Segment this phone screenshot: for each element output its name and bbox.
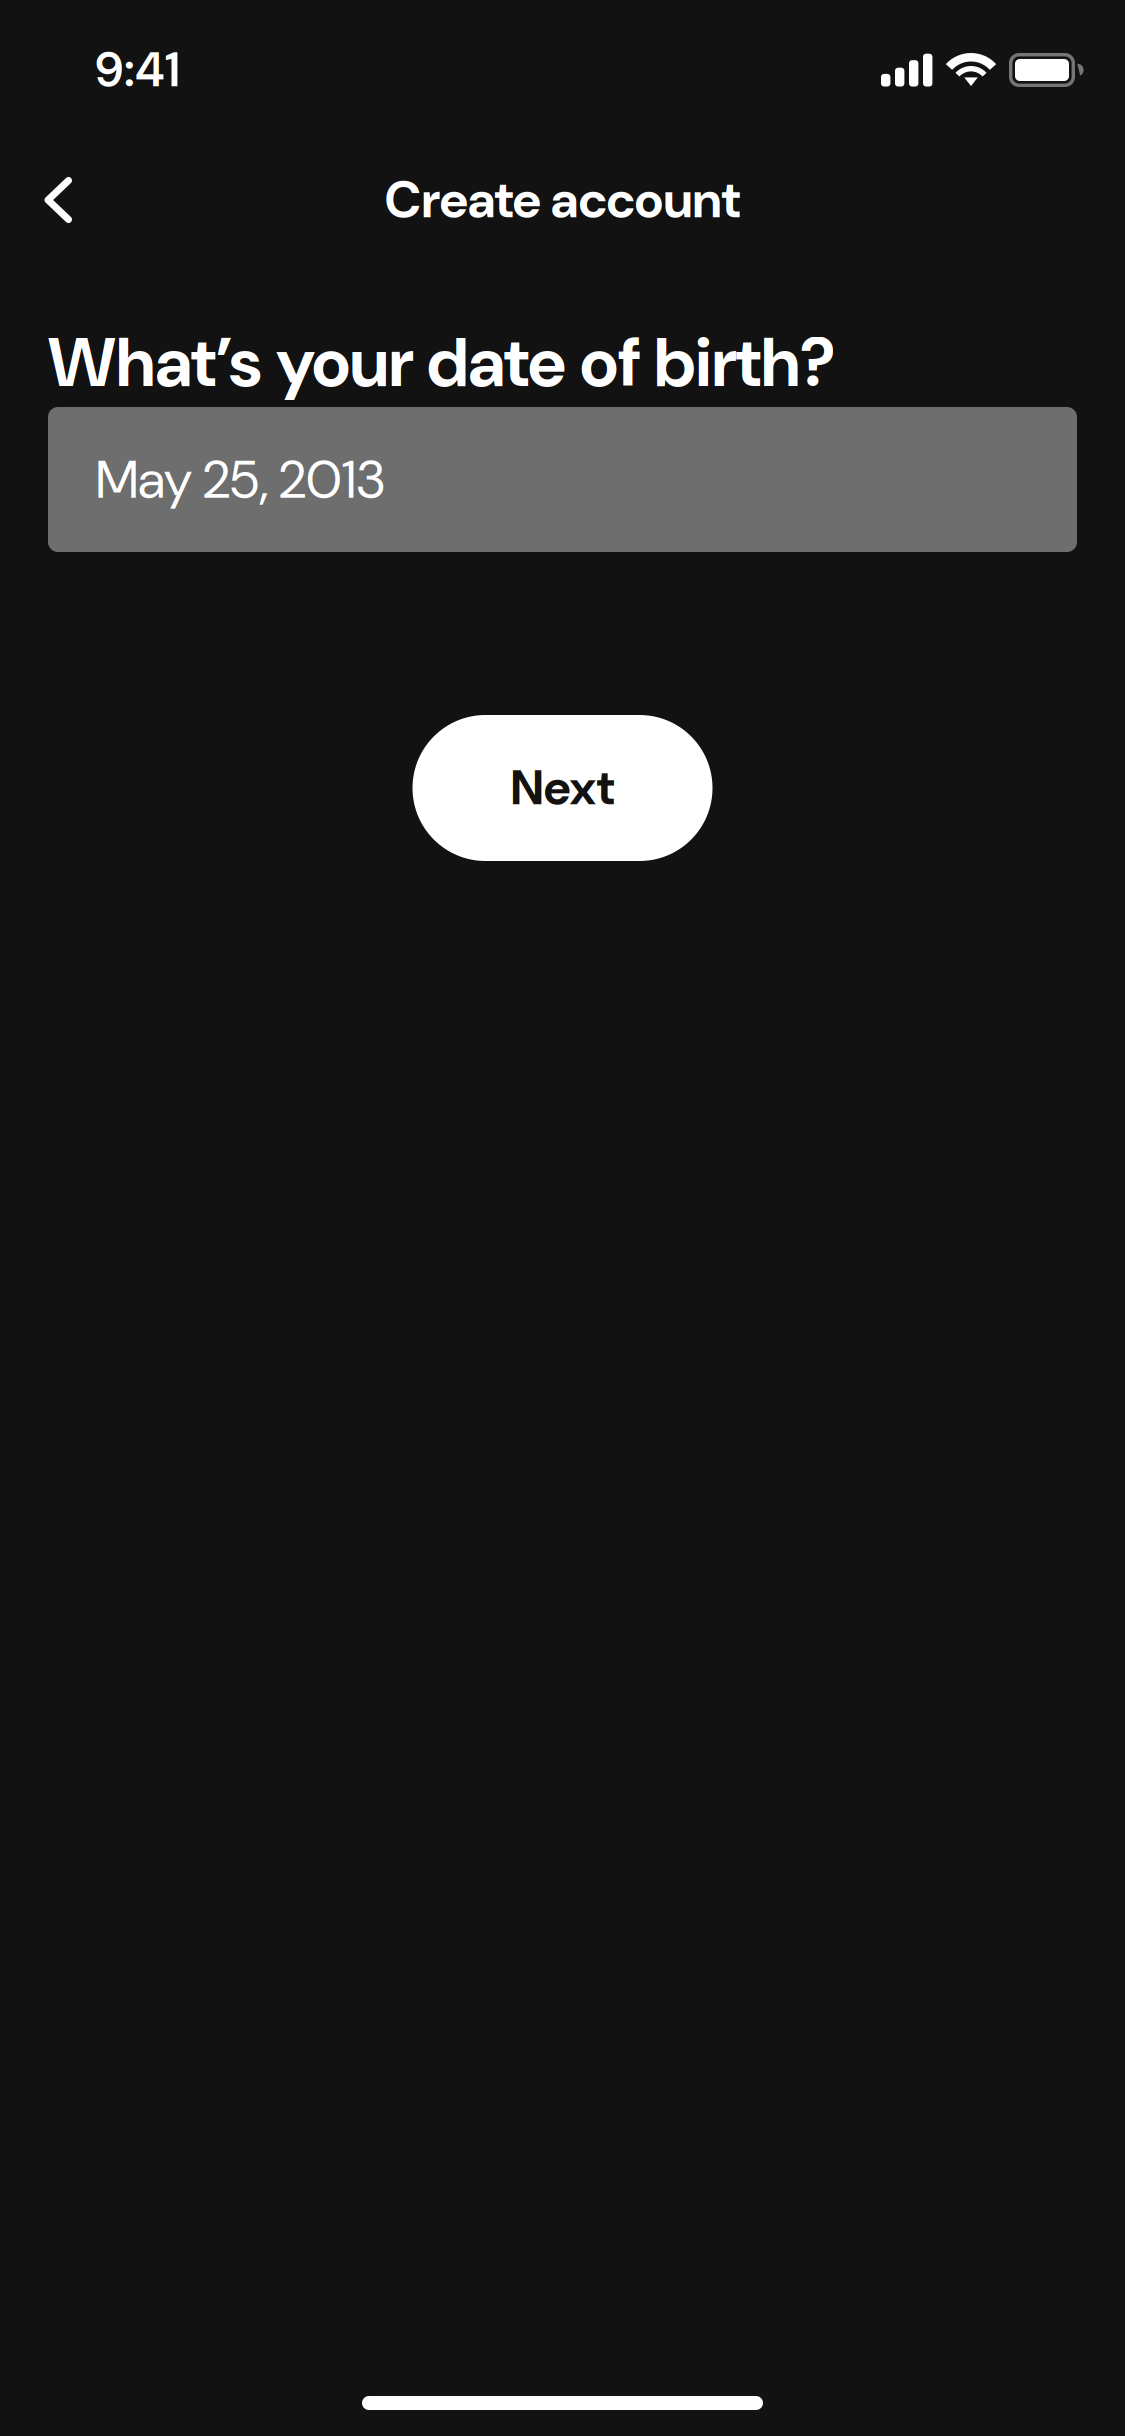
staticText: Next [510,757,614,819]
staticText: Create account [384,167,740,233]
staticText: What’s your date of birth? [48,318,836,407]
staticText: May 25, 2013 [96,445,385,514]
button[interactable]: Back [0,146,116,254]
button[interactable]: May 25, 2013 [48,407,1077,552]
button[interactable]: Next [412,715,712,861]
staticText: 9:41 [95,39,180,101]
